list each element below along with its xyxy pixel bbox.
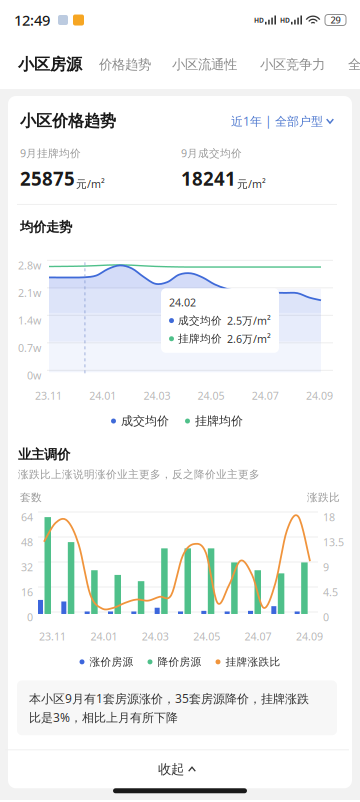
staticText: 48 — [21, 535, 33, 549]
staticText: 18 — [323, 510, 335, 524]
staticText: 24.01 — [90, 629, 117, 643]
staticText: 25875 — [20, 166, 75, 191]
staticText: 挂牌均价 — [178, 332, 222, 345]
staticText: 0w — [27, 368, 41, 382]
staticText: 小区价格趋势 — [20, 111, 116, 131]
staticText: 24.07 — [245, 629, 272, 643]
button[interactable]: 小区流通性 — [172, 56, 237, 73]
staticText: 收起 — [158, 761, 184, 777]
staticText: 24.05 — [193, 629, 220, 643]
staticText: HD — [254, 16, 264, 24]
staticText: 18241 — [181, 166, 236, 191]
button[interactable]: 收起 — [5, 750, 349, 788]
staticText: 16 — [21, 585, 33, 599]
staticText: 9 — [323, 560, 329, 574]
staticText: 小区房源 — [18, 55, 82, 74]
staticText: 24.01 — [89, 388, 116, 403]
staticText: 近1年 | 全部户型 — [231, 113, 323, 129]
staticText: 涨跌比 — [307, 491, 340, 504]
staticText: 元/m² — [76, 177, 105, 191]
staticText: 套数 — [20, 491, 42, 504]
button[interactable]: 小区房源 — [18, 55, 82, 74]
staticText: 2.6万/m² — [227, 332, 271, 346]
staticText: 本小区9月有1套房源涨价，35套房源降价，挂牌涨跌 — [29, 690, 309, 706]
staticText: 4.5 — [323, 585, 338, 599]
staticText: 23.11 — [39, 629, 66, 643]
staticText: 挂牌涨跌比 — [225, 655, 280, 668]
staticText: 元/m² — [237, 177, 266, 191]
staticText: 9月挂牌均价 — [20, 146, 81, 160]
staticText: 12:49 — [14, 10, 50, 30]
staticText: 成交均价 — [121, 414, 169, 428]
staticText: 64 — [21, 510, 33, 524]
staticText: 涨跌比上涨说明涨价业主更多，反之降价业主更多 — [18, 468, 260, 481]
staticText: 24.09 — [296, 629, 323, 643]
staticText: 24.02 — [169, 295, 196, 309]
staticText: 成交均价 — [178, 314, 222, 327]
staticText: 价格趋势 — [99, 56, 151, 73]
staticText: 13.5 — [323, 535, 344, 549]
staticText: 0 — [323, 610, 329, 624]
staticText: 24.03 — [143, 388, 170, 403]
staticText: 挂牌均价 — [195, 414, 243, 428]
staticText: 降价房源 — [157, 655, 201, 668]
button[interactable]: 全区 — [348, 56, 360, 73]
staticText: 均价走势 — [20, 219, 72, 235]
staticText: 2.1w — [18, 286, 41, 300]
staticText: 2.8w — [18, 258, 41, 272]
staticText: 比是3%，相比上月有所下降 — [29, 709, 178, 725]
staticText: 0 — [27, 610, 33, 624]
staticText: HD — [280, 16, 290, 24]
button[interactable]: 小区竞争力 — [260, 56, 325, 73]
button[interactable]: 近1年 | 全部户型 — [231, 113, 334, 129]
staticText: 2.5万/m² — [227, 313, 271, 328]
staticText: 全区 — [348, 56, 360, 73]
staticText: 小区流通性 — [172, 56, 237, 73]
staticText: 24.09 — [306, 388, 333, 403]
staticText: 29 — [330, 14, 340, 26]
staticText: 32 — [21, 560, 33, 574]
staticText: 24.03 — [142, 629, 169, 643]
staticText: 1.4w — [18, 313, 41, 327]
staticText: 23.11 — [35, 388, 62, 403]
staticText: 24.05 — [198, 388, 225, 403]
staticText: 9月成交均价 — [181, 146, 242, 160]
button[interactable]: 价格趋势 — [99, 56, 151, 73]
staticText: 业主调价 — [18, 446, 70, 463]
staticText: 0.7w — [18, 341, 41, 355]
staticText: 涨价房源 — [89, 655, 133, 668]
staticText: 小区竞争力 — [260, 56, 325, 73]
staticText: 24.07 — [252, 388, 279, 403]
